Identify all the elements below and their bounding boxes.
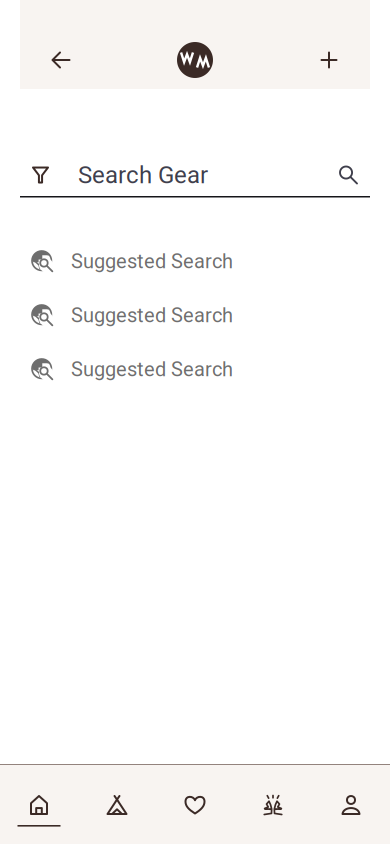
button[interactable]: Profile	[312, 765, 390, 844]
button[interactable]: Camping	[78, 765, 156, 844]
button[interactable]: Back	[35, 34, 87, 86]
staticText: Suggested Search	[71, 250, 233, 273]
button[interactable]: Suggested Search	[0, 234, 390, 288]
button[interactable]: Suggested Search	[0, 288, 390, 342]
button[interactable]: Home	[0, 765, 78, 844]
staticText: Suggested Search	[71, 304, 233, 327]
button[interactable]: Search	[327, 154, 370, 196]
button[interactable]: Community	[234, 765, 312, 844]
button[interactable]: Saved	[156, 765, 234, 844]
staticText: Search Gear	[78, 161, 208, 189]
button[interactable]: Suggested Search	[0, 342, 390, 396]
button[interactable]: Filter	[20, 154, 61, 196]
button[interactable]: Add	[303, 34, 355, 86]
staticText: Suggested Search	[71, 358, 233, 381]
